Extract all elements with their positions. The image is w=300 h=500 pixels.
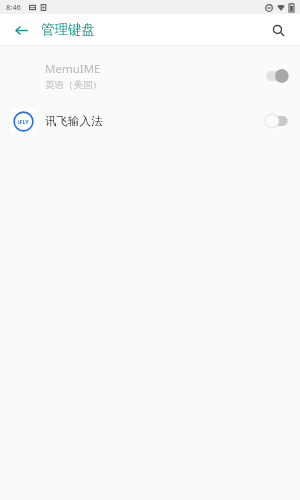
- staticText: 8:46: [6, 2, 21, 12]
- button[interactable]: Search: [266, 18, 290, 42]
- button[interactable]: MemuIME: [0, 53, 300, 98]
- button[interactable]: Back: [9, 18, 33, 42]
- staticText: 管理键盘: [41, 21, 95, 38]
- button[interactable]: Toggle: [264, 68, 290, 84]
- button[interactable]: Toggle: [264, 113, 290, 129]
- staticText: iFLY: [18, 118, 29, 125]
- staticText: MemuIME: [45, 61, 101, 77]
- staticText: 英语（美国）: [45, 79, 102, 91]
- button[interactable]: iFLY: [0, 98, 300, 143]
- staticText: 讯飞输入法: [45, 114, 103, 128]
